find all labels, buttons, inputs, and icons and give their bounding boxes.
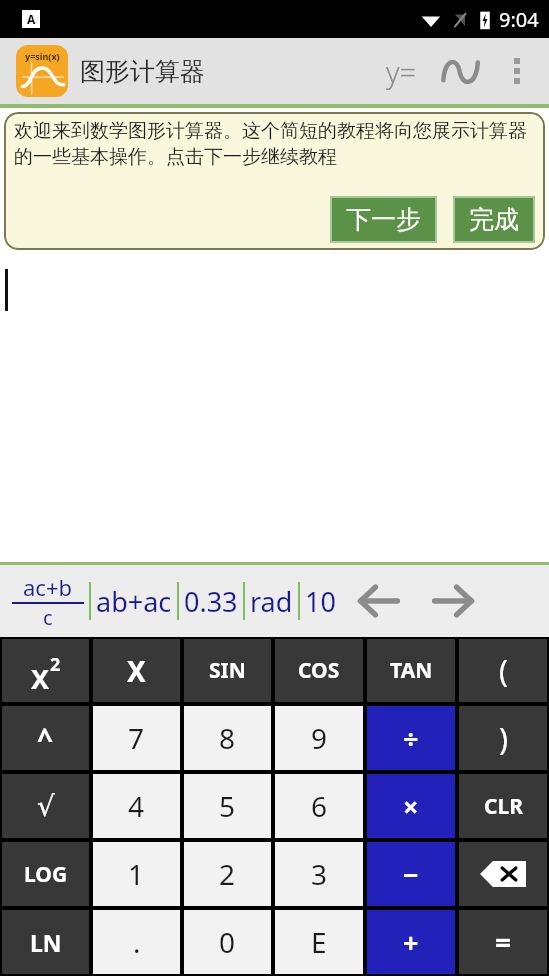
staticText: 7 [128,719,145,757]
button[interactable]: ÷ [367,706,455,770]
staticText: 0 [219,923,236,961]
button[interactable] [459,842,547,906]
staticText: + [403,924,419,961]
button[interactable]: ab+ac [96,583,172,620]
button[interactable]: More options [491,45,543,97]
button[interactable]: Functions y equals [371,41,431,101]
button[interactable]: 3 [275,842,363,906]
staticText: . [133,923,141,961]
staticText: ÷ [403,720,419,757]
button[interactable]: COS [275,639,363,702]
button[interactable]: TAN [367,639,455,702]
staticText: y= [386,52,417,91]
staticText: A [27,11,36,27]
button[interactable]: LN [2,910,89,974]
staticText: 3 [311,855,328,893]
button[interactable]: X [93,639,180,702]
staticText: 图形计算器 [80,56,205,87]
button[interactable]: Graph [431,41,491,101]
staticText: 8 [219,719,236,757]
button[interactable]: X [2,639,89,702]
staticText: 下一步 [346,204,421,235]
button[interactable]: = [459,910,547,974]
button[interactable]: ^ [2,706,89,770]
staticText: ac+b [23,572,73,602]
staticText: CLR [484,792,523,821]
button[interactable]: 5 [184,774,271,838]
button[interactable]: SIN [184,639,271,702]
staticText: X [31,660,50,697]
staticText: − [403,856,419,893]
button[interactable]: 8 [184,706,271,770]
button[interactable]: 7 [93,706,180,770]
staticText: TAN [390,656,433,685]
staticText: 2 [50,652,61,677]
button[interactable]: 完成 [455,198,533,241]
staticText: COS [298,656,340,685]
button[interactable]: 0 [184,910,271,974]
staticText: c [43,604,53,631]
staticText: = [495,923,512,961]
staticText: X [127,652,146,690]
staticText: ^ [37,719,54,757]
button[interactable]: 0.33 [184,583,238,620]
button[interactable]: ) [459,706,547,770]
button[interactable]: 2 [184,842,271,906]
staticText: 4 [128,787,145,825]
button[interactable]: rad [250,583,293,620]
button[interactable]: Move left [350,572,408,630]
staticText: ( [499,650,508,691]
button[interactable]: 1 [93,842,180,906]
button[interactable]: ac+b [12,572,84,631]
staticText: 9:04 [499,6,539,33]
staticText: 9 [311,719,328,757]
staticText: 2 [219,855,236,893]
staticText: LOG [24,860,68,889]
button[interactable]: ( [459,639,547,702]
button[interactable]: E [275,910,363,974]
staticText: y=sin(x) [25,50,60,62]
button[interactable]: 下一步 [332,198,435,241]
button[interactable]: . [93,910,180,974]
staticText: E [311,923,327,961]
button[interactable]: 9 [275,706,363,770]
button[interactable]: − [367,842,455,906]
button[interactable]: CLR [459,774,547,838]
staticText: 6 [311,787,328,825]
button[interactable]: 6 [275,774,363,838]
staticText: √ [37,790,55,823]
staticText: 1 [128,855,145,893]
button[interactable]: × [367,774,455,838]
button[interactable]: LOG [2,842,89,906]
staticText: SIN [209,656,246,685]
button[interactable]: 10 [305,583,336,620]
staticText: 5 [219,787,236,825]
staticText: LN [30,927,62,958]
staticText: ) [499,718,508,759]
staticText: 欢迎来到数学图形计算器。这个简短的教程将向您展示计算器的一些基本操作。点击下一步… [14,119,535,169]
button[interactable]: √ [2,774,89,838]
staticText: × [403,788,419,825]
button[interactable]: 4 [93,774,180,838]
button[interactable]: + [367,910,455,974]
button[interactable]: Move right [424,572,482,630]
staticText: 完成 [469,204,519,235]
